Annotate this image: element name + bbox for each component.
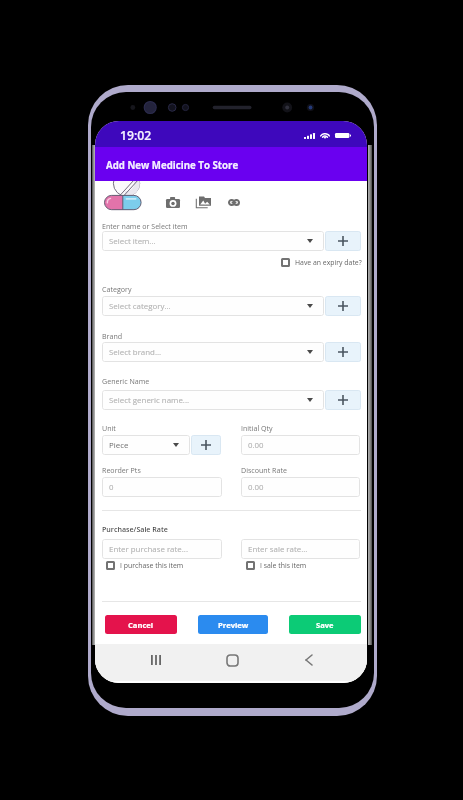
staticText: I sale this item xyxy=(260,561,307,570)
staticText: Enter sale rate... xyxy=(248,544,308,555)
button[interactable]: Home xyxy=(218,646,246,674)
button[interactable]: Enter sale rate... xyxy=(241,539,360,559)
button[interactable]: Enter purchase rate... xyxy=(102,539,222,559)
staticText: 0.00 xyxy=(248,440,264,451)
staticText: Piece xyxy=(109,440,129,451)
button[interactable]: Preview xyxy=(198,615,268,634)
button[interactable]: Have an expiry date? xyxy=(281,258,362,267)
staticText: Discount Rate xyxy=(241,465,287,475)
staticText: Select brand... xyxy=(109,347,162,358)
staticText: Select category... xyxy=(109,301,171,312)
button[interactable]: 0 xyxy=(102,477,222,497)
button[interactable]: Add xyxy=(325,342,361,362)
staticText: Enter purchase rate... xyxy=(109,544,188,555)
button[interactable]: I sale this item xyxy=(246,561,307,570)
staticText: 19:02 xyxy=(120,127,152,144)
staticText: Generic Name xyxy=(102,376,150,386)
button[interactable]: Camera xyxy=(162,191,184,213)
staticText: Brand xyxy=(102,331,123,341)
staticText: Purchase/Sale Rate xyxy=(102,524,168,534)
button[interactable]: Select item... xyxy=(102,231,324,251)
staticText: Have an expiry date? xyxy=(295,258,362,267)
button[interactable]: Add xyxy=(325,390,361,410)
button[interactable]: 0.00 xyxy=(241,477,360,497)
button[interactable]: Save xyxy=(289,615,361,634)
staticText: Initial Qty xyxy=(241,423,273,433)
button[interactable]: Add New Medicine To Store xyxy=(95,147,367,181)
staticText: Preview xyxy=(218,620,249,630)
staticText: 0.00 xyxy=(248,482,264,493)
button[interactable]: Back xyxy=(295,646,323,674)
staticText: Enter name or Select item xyxy=(102,221,188,231)
staticText: Category xyxy=(102,284,132,294)
button[interactable]: Select generic name... xyxy=(102,390,324,410)
staticText: Select generic name... xyxy=(109,395,190,406)
button[interactable]: Medicine xyxy=(104,175,142,208)
button[interactable]: Select brand... xyxy=(102,342,324,362)
staticText: Unit xyxy=(102,423,116,433)
button[interactable]: I purchase this item xyxy=(106,561,184,570)
button[interactable]: Add xyxy=(325,296,361,316)
button[interactable]: Add xyxy=(325,231,361,251)
staticText: Reorder Pts xyxy=(102,465,141,475)
staticText: Save xyxy=(316,620,334,630)
button[interactable]: Cancel xyxy=(105,615,177,634)
staticText: Cancel xyxy=(128,620,154,630)
button[interactable]: Link xyxy=(223,191,245,213)
button[interactable]: Recents xyxy=(142,646,170,674)
staticText: Add New Medicine To Store xyxy=(106,159,239,172)
staticText: Select item... xyxy=(109,236,156,247)
button[interactable]: Select category... xyxy=(102,296,324,316)
button[interactable]: Add xyxy=(191,435,221,455)
staticText: I purchase this item xyxy=(120,561,184,570)
staticText: 0 xyxy=(109,482,114,493)
button[interactable]: Piece xyxy=(102,435,190,455)
button[interactable]: Gallery xyxy=(192,191,214,213)
button[interactable]: 0.00 xyxy=(241,435,360,455)
